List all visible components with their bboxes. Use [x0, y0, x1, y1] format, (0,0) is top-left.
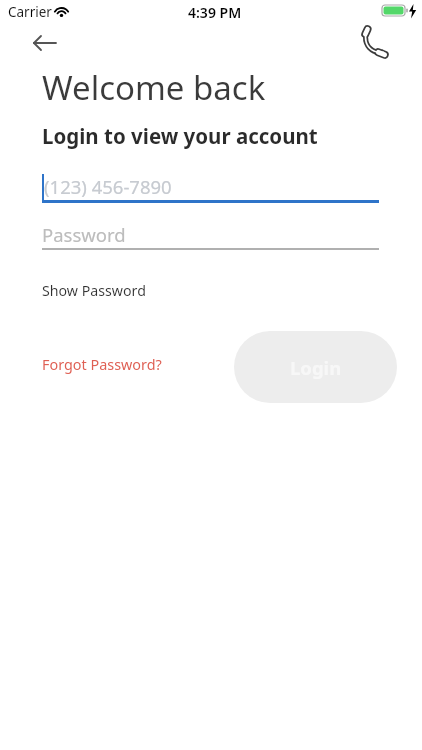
staticText: 4:39 PM	[188, 3, 242, 22]
staticText: Password	[42, 222, 126, 247]
staticText: (123) 456-7890	[44, 174, 172, 199]
staticText: Carrier	[8, 3, 52, 21]
button[interactable]	[24, 30, 66, 56]
button[interactable]: Show Password	[42, 281, 146, 300]
button[interactable]: Forgot Password?	[42, 355, 162, 375]
button[interactable]	[354, 22, 406, 64]
staticText: Show Password	[42, 281, 146, 300]
button[interactable]: Login	[234, 331, 397, 403]
staticText: Forgot Password?	[42, 355, 162, 375]
staticText: Welcome back	[42, 65, 266, 110]
button[interactable]: Password	[42, 216, 379, 250]
staticText: Login to view your account	[42, 122, 318, 150]
button[interactable]: (123) 456-7890	[42, 168, 379, 204]
staticText: Login	[290, 355, 342, 380]
